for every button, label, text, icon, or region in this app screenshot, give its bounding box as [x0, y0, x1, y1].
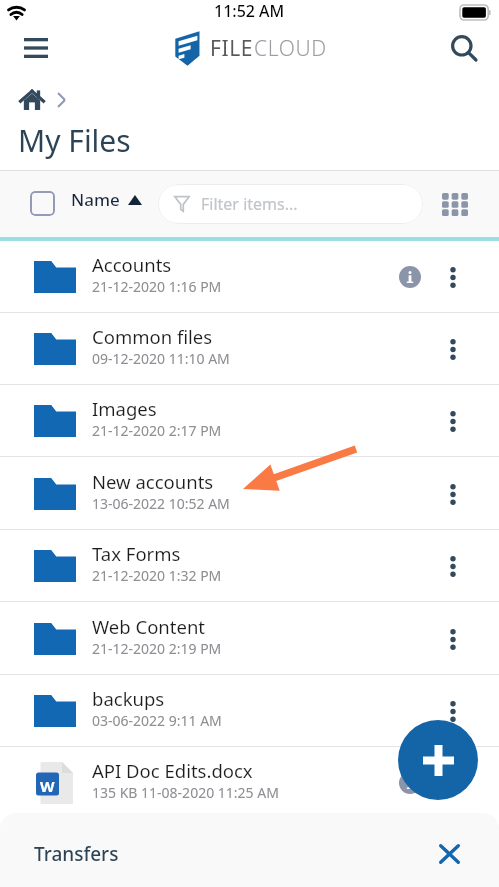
staticText: 21-12-2020 2:17 PM	[92, 421, 222, 440]
button[interactable]: Filter items...	[174, 184, 423, 224]
staticText: 21-12-2020 2:19 PM	[92, 639, 222, 658]
button[interactable]: Tax Forms	[0, 530, 499, 602]
button[interactable]: Search	[441, 25, 487, 71]
button[interactable]: Menu	[13, 25, 59, 71]
button[interactable]: More options	[430, 458, 475, 530]
staticText: CLOUD	[254, 34, 327, 63]
staticText: API Doc Edits.docx	[92, 758, 253, 783]
staticText: Tax Forms	[92, 541, 181, 566]
button[interactable]: Close transfers	[430, 835, 468, 873]
staticText: 21-12-2020 1:32 PM	[92, 566, 222, 585]
button[interactable]: Add	[398, 720, 478, 800]
button[interactable]: Common files	[0, 313, 499, 385]
button[interactable]: Grid view	[436, 186, 474, 222]
button[interactable]: More options	[430, 675, 475, 747]
button[interactable]: New accounts	[0, 458, 499, 530]
button[interactable]: More options	[430, 530, 475, 602]
staticText: Images	[92, 396, 157, 421]
button[interactable]: Info	[399, 772, 421, 794]
button[interactable]: Name	[71, 188, 142, 211]
button[interactable]: More options	[430, 603, 475, 675]
button[interactable]: Images	[0, 385, 499, 457]
button[interactable]: More options	[430, 747, 475, 819]
button[interactable]: W	[0, 747, 499, 819]
staticText: 11:52 AM	[214, 0, 285, 22]
staticText: 135 KB 11-08-2020 11:25 AM	[92, 783, 279, 802]
button[interactable]: More options	[430, 313, 475, 385]
staticText: 21-12-2020 1:16 PM	[92, 277, 222, 296]
button[interactable]: More options	[430, 241, 475, 313]
button[interactable]: Info	[399, 266, 421, 288]
staticText: Transfers	[34, 841, 119, 867]
staticText: Name	[71, 188, 120, 211]
button[interactable]: backups	[0, 675, 499, 747]
staticText: Web Content	[92, 614, 205, 639]
staticText: 13-06-2022 10:52 AM	[92, 494, 230, 513]
staticText: FILE	[210, 34, 254, 63]
staticText: W	[40, 776, 55, 796]
button[interactable]: Select all	[30, 191, 55, 216]
staticText: New accounts	[92, 469, 214, 494]
button[interactable]: Home	[18, 86, 46, 114]
staticText: My Files	[18, 120, 131, 161]
staticText: Filter items...	[201, 193, 298, 215]
button[interactable]: More options	[430, 385, 475, 457]
staticText: backups	[92, 686, 165, 711]
staticText: Accounts	[92, 252, 172, 277]
staticText: Common files	[92, 324, 213, 349]
staticText: 09-12-2020 11:10 AM	[92, 349, 230, 368]
button[interactable]: Accounts	[0, 241, 499, 313]
button[interactable]: Web Content	[0, 603, 499, 675]
staticText: 03-06-2022 9:11 AM	[92, 711, 222, 730]
